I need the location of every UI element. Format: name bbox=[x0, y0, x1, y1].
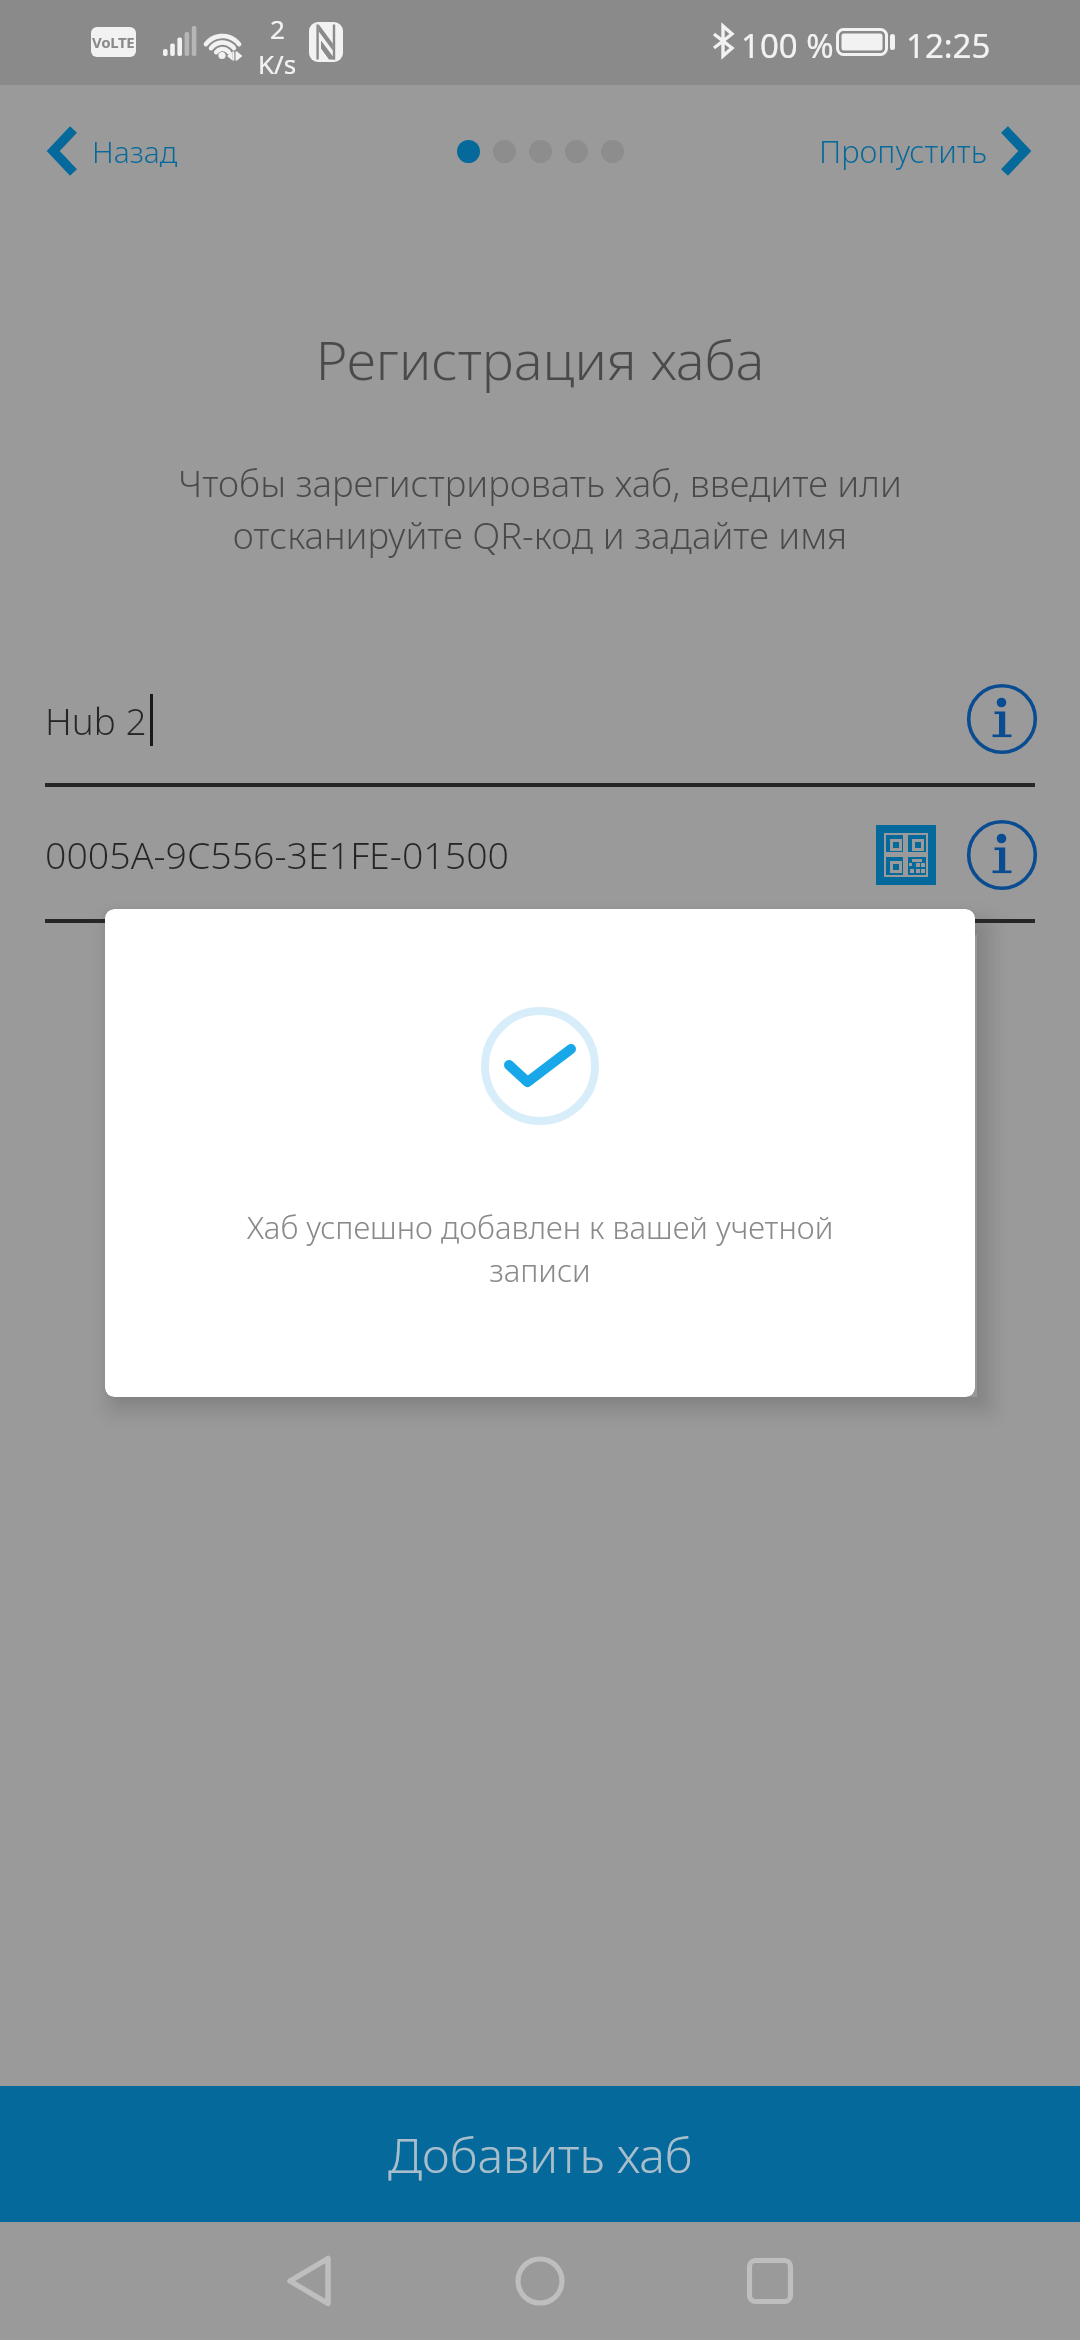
button[interactable]: Информация bbox=[958, 811, 1046, 899]
staticText: 100 % bbox=[741, 23, 834, 68]
button[interactable]: Недавние приложения bbox=[722, 2233, 818, 2329]
staticText: VoLTE bbox=[92, 32, 135, 52]
button[interactable]: Назад bbox=[42, 110, 178, 192]
staticText: 0005A-9C556-3E1FE-01500 bbox=[45, 829, 509, 880]
staticText: Назад bbox=[92, 131, 178, 172]
staticText: 2 bbox=[270, 11, 285, 46]
staticText: K/s bbox=[258, 46, 297, 81]
button[interactable]: Главный экран bbox=[492, 2233, 588, 2329]
button[interactable]: Назад bbox=[262, 2233, 358, 2329]
button[interactable]: Добавить хаб bbox=[0, 2086, 1080, 2222]
button[interactable]: Пропустить bbox=[819, 110, 1036, 192]
staticText: Пропустить bbox=[819, 130, 987, 172]
staticText: Чтобы зарегистрировать хаб, введите или … bbox=[140, 458, 940, 560]
staticText: Регистрация хаба bbox=[0, 322, 1080, 396]
button[interactable]: Информация bbox=[958, 675, 1046, 763]
button[interactable]: Сканировать QR-код bbox=[862, 811, 950, 899]
staticText: Hub 2 bbox=[45, 695, 147, 745]
staticText: Хаб успешно добавлен к вашей учетной зап… bbox=[200, 1206, 880, 1291]
staticText: Добавить хаб bbox=[388, 2122, 693, 2187]
staticText: 12:25 bbox=[906, 23, 991, 68]
